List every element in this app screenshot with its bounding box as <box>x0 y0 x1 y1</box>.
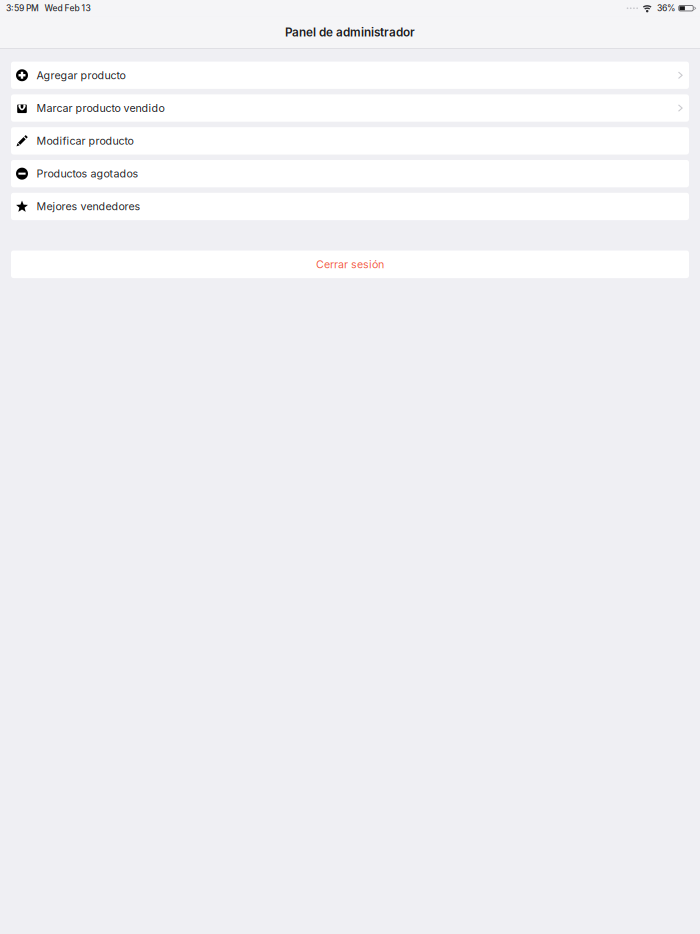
staticText: Cerrar sesión <box>316 258 384 271</box>
staticText: 36% <box>657 3 675 13</box>
staticText: Marcar producto vendido <box>36 102 164 114</box>
button[interactable]: Modificar producto <box>11 127 689 154</box>
staticText: Mejores vendedores <box>36 200 140 213</box>
staticText: Agregar producto <box>36 69 125 82</box>
button[interactable]: Productos agotados <box>11 160 689 187</box>
button[interactable]: Marcar producto vendido <box>11 94 689 122</box>
staticText: Productos agotados <box>36 167 138 180</box>
staticText: Panel de administrador <box>285 25 415 39</box>
button[interactable]: Cerrar sesión <box>11 250 689 278</box>
staticText: 3:59 PM <box>6 3 39 13</box>
staticText: Modificar producto <box>36 134 133 147</box>
staticText: Wed Feb 13 <box>45 3 91 13</box>
button[interactable]: Agregar producto <box>11 62 689 89</box>
button[interactable]: Mejores vendedores <box>11 193 689 220</box>
